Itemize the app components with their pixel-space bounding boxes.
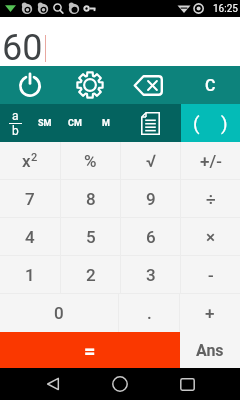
button[interactable]: SM <box>30 104 59 142</box>
staticText: 8 <box>86 189 96 209</box>
staticText: 7 <box>25 189 35 209</box>
button[interactable]: 6 <box>121 218 180 255</box>
staticText: 2 <box>31 151 38 164</box>
staticText: × <box>206 227 216 247</box>
button[interactable]: Recents <box>147 368 227 400</box>
button[interactable]: ( <box>181 104 240 142</box>
staticText: 5 <box>86 227 96 247</box>
staticText: 16:25 <box>213 3 238 15</box>
button[interactable]: CM <box>59 104 91 142</box>
button[interactable]: 7 <box>0 180 60 217</box>
staticText: 4 <box>25 227 35 247</box>
staticText: a <box>12 109 19 123</box>
staticText: x <box>22 151 31 171</box>
staticText: 60 <box>2 27 43 69</box>
staticText: M <box>102 118 110 129</box>
staticText: + <box>205 303 215 323</box>
staticText: ÷ <box>206 189 216 209</box>
staticText: 0 <box>54 303 64 323</box>
button[interactable]: C <box>180 66 240 104</box>
button[interactable]: 0 <box>0 294 118 332</box>
staticText: 3 <box>146 265 156 285</box>
button[interactable]: Fraction <box>0 104 30 142</box>
button[interactable]: +/- <box>181 142 240 179</box>
button[interactable]: + <box>180 294 240 332</box>
button[interactable]: 3 <box>121 256 180 293</box>
staticText: 9 <box>146 189 156 209</box>
staticText: . <box>147 303 152 323</box>
staticText: = <box>84 339 96 362</box>
button[interactable]: √ <box>121 142 180 179</box>
staticText: √ <box>146 151 156 171</box>
staticText: CM <box>68 118 82 129</box>
button[interactable]: 2 <box>61 256 120 293</box>
button[interactable]: ÷ <box>181 180 240 217</box>
button[interactable]: 4 <box>0 218 60 255</box>
button[interactable]: History <box>120 104 181 142</box>
button[interactable]: 5 <box>61 218 120 255</box>
button[interactable]: Ans <box>180 332 240 368</box>
button[interactable]: x <box>0 142 60 179</box>
button[interactable]: 1 <box>0 256 60 293</box>
staticText: C <box>205 76 216 95</box>
staticText: b <box>12 124 19 138</box>
staticText: 2 <box>86 265 96 285</box>
staticText: Ans <box>196 341 224 360</box>
button[interactable]: . <box>119 294 179 332</box>
button[interactable]: % <box>61 142 120 179</box>
staticText: 1 <box>25 265 35 285</box>
staticText: +/- <box>200 151 222 171</box>
button[interactable]: Back <box>13 368 93 400</box>
staticText: ) <box>221 112 228 134</box>
staticText: 6 <box>146 227 156 247</box>
button[interactable]: × <box>181 218 240 255</box>
button[interactable]: M <box>91 104 120 142</box>
button[interactable]: Power <box>0 66 60 104</box>
staticText: - <box>208 265 214 285</box>
button[interactable]: = <box>0 332 180 368</box>
button[interactable]: Settings <box>60 66 120 104</box>
button[interactable]: 8 <box>61 180 120 217</box>
button[interactable]: Home <box>80 368 160 400</box>
staticText: ( <box>193 112 200 134</box>
staticText: % <box>84 151 97 171</box>
button[interactable]: Backspace <box>120 66 180 104</box>
staticText: SM <box>38 118 52 129</box>
button[interactable]: - <box>181 256 240 293</box>
button[interactable]: 9 <box>121 180 180 217</box>
